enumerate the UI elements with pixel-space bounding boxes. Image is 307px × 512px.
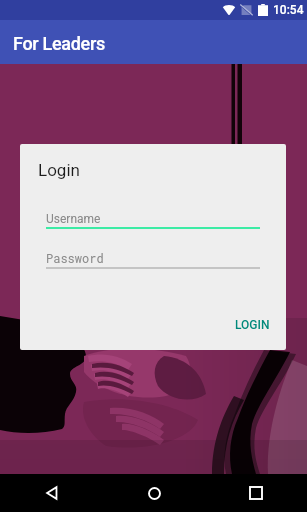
button[interactable]: LOGIN <box>227 310 278 340</box>
staticText: Login <box>38 160 80 180</box>
button[interactable]: Back <box>0 474 103 512</box>
staticText: LOGIN <box>235 318 270 332</box>
staticText: For Leaders <box>13 33 105 54</box>
staticText: 10:54 <box>273 3 304 17</box>
button[interactable]: Recent apps <box>205 474 307 512</box>
button[interactable]: For Leaders <box>0 20 307 64</box>
button[interactable]: Home <box>103 474 205 512</box>
staticText: Username <box>46 212 101 226</box>
staticText: Password <box>46 250 104 266</box>
